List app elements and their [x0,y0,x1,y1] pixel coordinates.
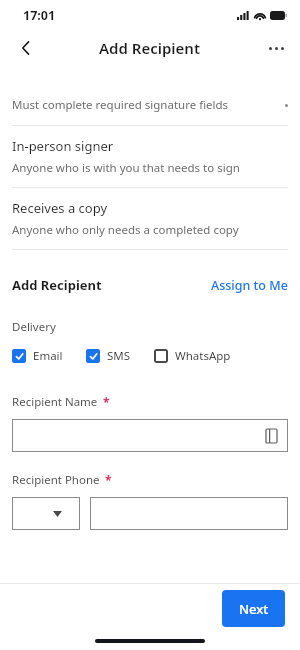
staticText: * [103,394,110,410]
staticText: Add Recipient [12,276,102,294]
button[interactable]: More options [258,30,294,66]
button[interactable]: Next [222,590,285,627]
button[interactable]: Choose from contacts [261,426,281,446]
staticText: Add Recipient [99,38,201,58]
button[interactable] [90,497,288,530]
button[interactable]: Assign to Me [211,277,288,294]
button[interactable]: Choose from contacts [12,419,288,452]
staticText: SMS [107,348,131,364]
staticText: WhatsApp [175,348,231,364]
staticText: Anyone who is with you that needs to sig… [12,160,240,176]
button[interactable]: SMS [86,346,131,366]
staticText: Must complete required signature fields [12,97,229,113]
button[interactable]: Back [8,30,44,66]
staticText: Email [33,348,63,364]
staticText: Next [239,600,269,618]
staticText: 17:01 [23,7,56,24]
staticText: Recipient Phone [12,472,100,488]
button[interactable]: Email [12,346,63,366]
staticText: * [105,472,112,488]
staticText: In-person signer [12,137,114,155]
staticText: Anyone who only needs a completed copy [12,222,239,238]
button[interactable]: Country code [12,497,80,530]
staticText: Receives a copy [12,199,108,217]
button[interactable]: WhatsApp [154,346,231,366]
staticText: Delivery [12,319,56,335]
staticText: Recipient Name [12,394,98,410]
button[interactable]: Receives a copy [0,188,300,249]
button[interactable]: In-person signer [0,126,300,187]
staticText: Assign to Me [211,277,288,294]
